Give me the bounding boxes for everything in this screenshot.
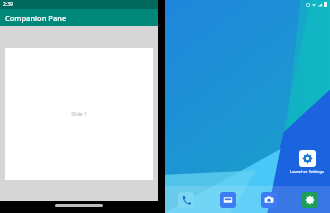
staticText: 2:39 [3, 1, 13, 8]
other: App [261, 192, 277, 208]
button[interactable]: App [248, 186, 289, 213]
button[interactable]: App [165, 186, 207, 213]
other: App [178, 192, 194, 208]
button[interactable]: App [289, 186, 330, 213]
other: App [220, 192, 236, 208]
button[interactable]: App [207, 186, 248, 213]
staticText: Launcher Settings [290, 169, 324, 174]
button[interactable]: Launcher Settings [288, 150, 326, 174]
staticText: Slide 1 [71, 111, 87, 118]
staticText: Companion Pane [5, 13, 67, 23]
other: App [302, 192, 318, 208]
button[interactable]: Companion Pane [0, 9, 158, 26]
